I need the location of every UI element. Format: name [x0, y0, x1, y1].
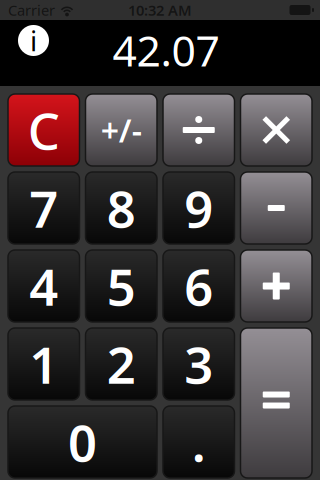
- staticText: .: [192, 408, 206, 476]
- staticText: i: [30, 22, 37, 59]
- button[interactable]: 7: [8, 172, 79, 244]
- button[interactable]: .: [163, 406, 234, 478]
- button[interactable]: 0: [8, 406, 157, 478]
- staticText: 6: [184, 252, 213, 320]
- button[interactable]: Minus: [240, 172, 312, 244]
- staticText: Carrier: [8, 0, 55, 20]
- button[interactable]: 5: [85, 250, 157, 322]
- button[interactable]: Info: [18, 25, 49, 56]
- staticText: +/-: [101, 109, 142, 151]
- staticText: 42.07: [112, 22, 219, 78]
- staticText: 3: [184, 330, 213, 398]
- button[interactable]: C: [8, 94, 79, 166]
- staticText: 1: [29, 330, 58, 398]
- staticText: 2: [107, 330, 136, 398]
- button[interactable]: 3: [163, 328, 234, 400]
- button[interactable]: 9: [163, 172, 234, 244]
- button[interactable]: Divide: [163, 94, 234, 166]
- button[interactable]: Plus: [240, 250, 312, 322]
- staticText: 4: [29, 252, 58, 320]
- button[interactable]: Multiply: [240, 94, 312, 166]
- button[interactable]: 1: [8, 328, 79, 400]
- staticText: 7: [29, 174, 58, 242]
- staticText: 9: [184, 174, 213, 242]
- staticText: 5: [107, 252, 136, 320]
- button[interactable]: 2: [85, 328, 157, 400]
- button[interactable]: +/-: [85, 94, 157, 166]
- staticText: C: [28, 96, 60, 164]
- button[interactable]: 4: [8, 250, 79, 322]
- button[interactable]: 6: [163, 250, 234, 322]
- staticText: 0: [68, 408, 97, 476]
- button[interactable]: 8: [85, 172, 157, 244]
- staticText: 8: [107, 174, 136, 242]
- button[interactable]: Equals: [240, 328, 312, 478]
- staticText: 10:32 AM: [128, 0, 192, 20]
